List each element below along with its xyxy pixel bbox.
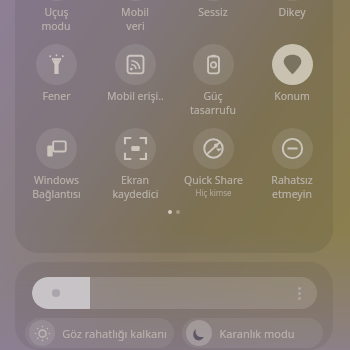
staticText: tasarrufu	[190, 103, 236, 117]
staticText: Ekran	[121, 173, 149, 187]
staticText: Bağlantısı	[32, 187, 81, 201]
button[interactable]: Karanlık modu	[182, 318, 323, 348]
staticText: etmeyin	[272, 187, 312, 201]
staticText: Rahatsız	[271, 173, 313, 187]
button[interactable]: Parlaklık	[32, 277, 317, 309]
button[interactable]: Güç tasarrufu	[176, 44, 250, 117]
button[interactable]: Ekran kaydedici	[98, 128, 172, 201]
button[interactable]: Rahatsız etmeyin	[255, 128, 329, 201]
staticText: Göz rahatlığı kalkanı	[62, 326, 167, 341]
staticText: Fener	[42, 89, 71, 103]
button[interactable]: Konum	[255, 44, 329, 103]
staticText: Windows	[34, 173, 79, 187]
button[interactable]: Quick Share	[176, 128, 250, 198]
staticText: kaydedici	[112, 187, 159, 201]
button[interactable]: Mobil erişim	[98, 44, 172, 103]
button[interactable]: Windows Bağlantısı	[19, 128, 93, 201]
staticText: veri	[126, 19, 145, 33]
staticText: Uçuş	[44, 5, 69, 19]
staticText: Güç	[203, 89, 223, 103]
button[interactable]: Göz rahatlığı kalkanı	[25, 318, 174, 348]
button[interactable]: Mobil veri	[98, 0, 172, 33]
staticText: Konum	[274, 89, 310, 103]
staticText: Quick Share	[184, 173, 243, 187]
button[interactable]: Dikey	[255, 0, 329, 19]
staticText: Karanlık modu	[219, 326, 295, 341]
staticText: Mobil erişi..	[107, 89, 164, 103]
staticText: Sessiz	[198, 5, 228, 19]
button[interactable]: Uçuş modu	[19, 0, 93, 33]
button[interactable]: Sessiz	[176, 0, 250, 19]
staticText: Mobil	[121, 5, 149, 19]
button[interactable]: Fener	[19, 44, 93, 103]
staticText: modu	[41, 19, 71, 33]
staticText: Dikey	[278, 5, 306, 19]
staticText: Hiç kimse	[195, 187, 232, 198]
